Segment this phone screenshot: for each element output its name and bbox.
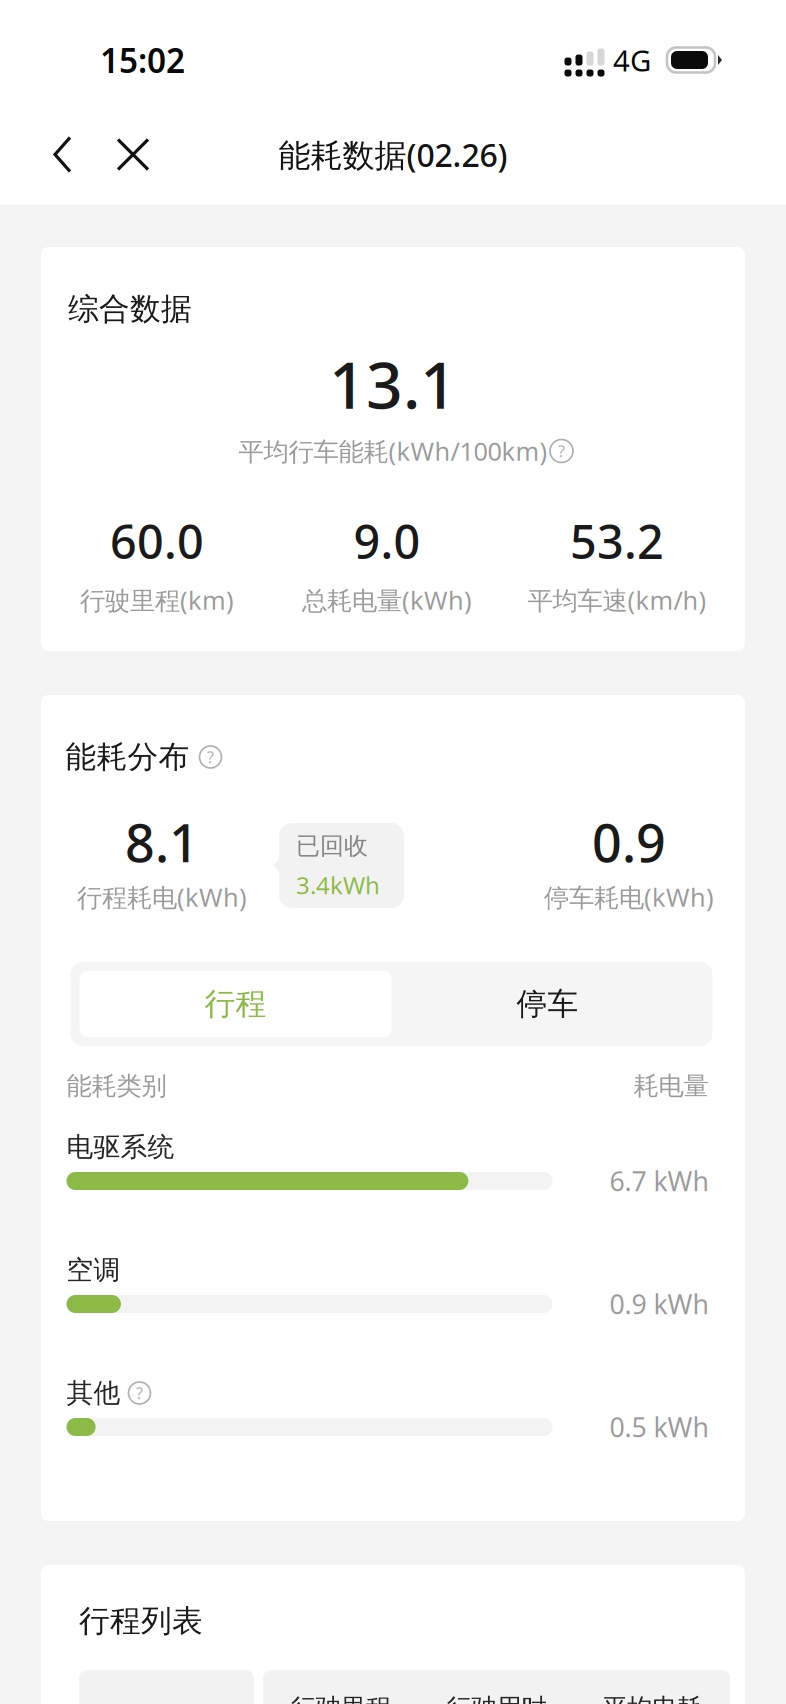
staticText: 空调 (66, 1254, 120, 1286)
staticText: 0.5 kWh (609, 1409, 708, 1445)
staticText: ? (558, 440, 565, 462)
staticText: 15:02 (100, 38, 185, 82)
staticText: 已回收 (296, 831, 368, 861)
staticText: 0.9 kWh (609, 1286, 708, 1322)
staticText: 8.1 (125, 807, 199, 877)
staticText: 停车耗电(kWh) (544, 880, 714, 914)
staticText: 53.2 (570, 510, 664, 572)
staticText: 行驶里程 (291, 1692, 391, 1704)
staticText: 电驱系统 (66, 1131, 174, 1163)
button[interactable]: Close (98, 104, 168, 205)
staticText: 行驶里程(km) (80, 583, 234, 617)
staticText: 3.4kWh (296, 869, 380, 901)
staticText: 13.1 (329, 341, 457, 426)
staticText: 停车 (516, 985, 578, 1023)
button[interactable]: 行程 (79, 971, 391, 1037)
staticText: ? (207, 746, 214, 768)
button[interactable]: 停车 (391, 971, 703, 1037)
staticText: 能耗分布 (65, 738, 189, 776)
staticText: 4G (613, 40, 651, 79)
staticText: 6.7 kWh (609, 1163, 708, 1199)
staticText: 能耗数据(02.26) (278, 133, 507, 176)
staticText: 平均行车能耗(kWh/100km) (238, 434, 547, 468)
staticText: 耗电量 (633, 1070, 708, 1101)
staticText: 0.9 (592, 807, 666, 877)
staticText: 行程耗电(kWh) (77, 880, 247, 914)
staticText: ? (136, 1382, 143, 1404)
staticText: 平均车速(km/h) (527, 583, 706, 617)
staticText: 60.0 (110, 510, 204, 572)
staticText: 行程列表 (79, 1602, 203, 1640)
staticText: 综合数据 (68, 290, 192, 328)
staticText: 能耗类别 (66, 1070, 166, 1101)
button[interactable]: Back (28, 104, 98, 205)
staticText: 行驶用时 (446, 1692, 546, 1704)
staticText: 平均电耗 (602, 1692, 702, 1704)
staticText: 行程 (204, 985, 266, 1023)
staticText: 总耗电量(kWh) (302, 583, 472, 617)
staticText: 9.0 (353, 510, 420, 572)
staticText: 其他 (66, 1377, 120, 1409)
